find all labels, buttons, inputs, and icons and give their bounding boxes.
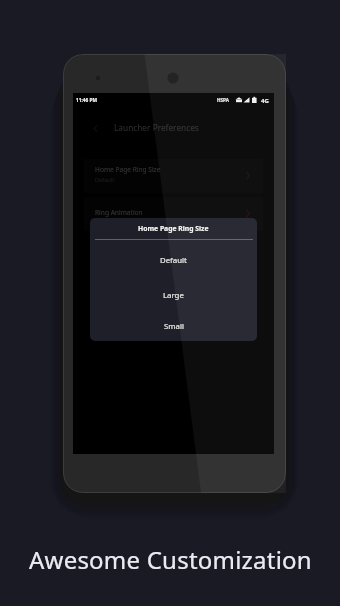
button[interactable]: Large (90, 282, 257, 308)
button[interactable]: Back (89, 122, 101, 134)
staticText: Default (95, 176, 115, 184)
staticText: 11:46 PM (76, 97, 98, 104)
staticText: Ring Animation (95, 208, 143, 217)
staticText: Home Page Ring Size (138, 224, 209, 233)
staticText: Home Page Ring Size (95, 165, 161, 174)
staticText: Large (163, 290, 184, 301)
staticText: HSPA (217, 97, 229, 103)
staticText: 4G (261, 97, 269, 105)
staticText: Default (160, 255, 187, 266)
button[interactable]: Home Page Ring Size (84, 159, 263, 193)
staticText: Small (164, 321, 184, 332)
button[interactable]: Default (90, 247, 257, 273)
staticText: Launcher Preferences (114, 122, 199, 133)
staticText: Awesome Customization (29, 543, 312, 576)
button[interactable]: Ring Animation (84, 197, 263, 231)
button[interactable]: Small (90, 313, 257, 339)
